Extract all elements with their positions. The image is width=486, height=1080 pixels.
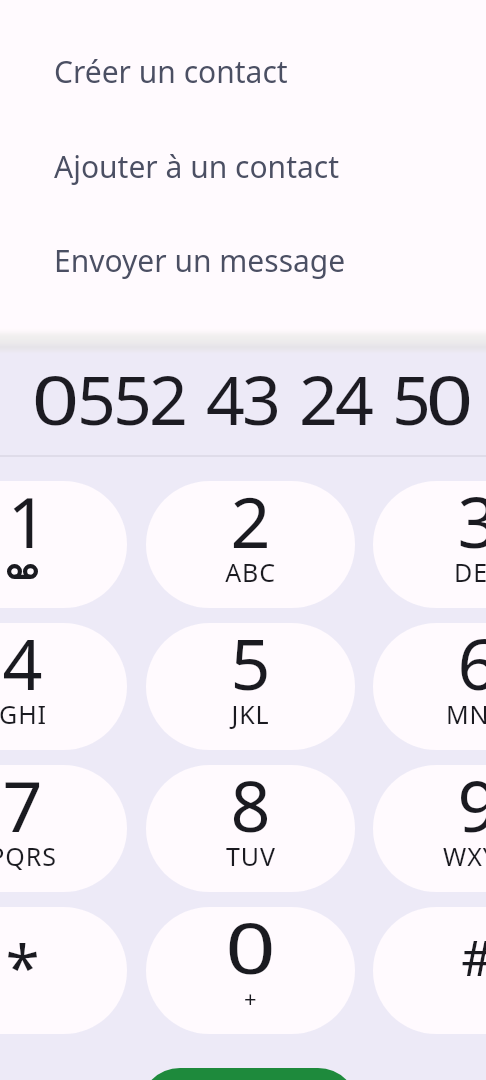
staticText: 9 bbox=[457, 765, 486, 852]
button[interactable]: Ajouter à un contact bbox=[0, 119, 486, 213]
staticText: 8 bbox=[230, 765, 271, 852]
staticText: 4 bbox=[2, 623, 43, 710]
button[interactable]: 3 bbox=[373, 481, 486, 608]
staticText: 6 bbox=[457, 623, 486, 710]
staticText: PQRS bbox=[0, 839, 57, 873]
staticText: 2 bbox=[299, 352, 335, 445]
button[interactable]: * bbox=[0, 907, 127, 1034]
button[interactable]: 1 bbox=[0, 481, 127, 608]
button[interactable]: Créer un contact bbox=[0, 24, 486, 118]
staticText: GHI bbox=[0, 697, 47, 731]
staticText: 2 bbox=[149, 352, 185, 445]
staticText: 1 bbox=[7, 481, 48, 568]
staticText: 4 bbox=[206, 352, 242, 445]
staticText: 3 bbox=[242, 352, 278, 445]
button[interactable]: 7 bbox=[0, 765, 127, 892]
staticText: MNO bbox=[446, 697, 486, 731]
staticText: 5 bbox=[230, 623, 271, 710]
staticText: Ajouter à un contact bbox=[54, 146, 340, 187]
staticText: JKL bbox=[231, 697, 270, 731]
button[interactable]: 2 bbox=[146, 481, 355, 608]
staticText: 0 bbox=[426, 352, 473, 445]
staticText: WXYZ bbox=[443, 839, 486, 873]
staticText: 2 bbox=[230, 481, 271, 568]
button[interactable]: Envoyer un message bbox=[0, 213, 486, 307]
staticText: Envoyer un message bbox=[54, 240, 346, 281]
staticText: 7 bbox=[2, 765, 43, 852]
staticText: DEF bbox=[454, 555, 486, 589]
button[interactable]: 8 bbox=[146, 765, 355, 892]
button[interactable]: 5 bbox=[146, 623, 355, 750]
staticText: 0 bbox=[225, 907, 276, 994]
button[interactable]: 9 bbox=[373, 765, 486, 892]
button[interactable]: 6 bbox=[373, 623, 486, 750]
staticText: 5 bbox=[113, 352, 149, 445]
staticText: 5 bbox=[392, 352, 428, 445]
button[interactable]: Appeler bbox=[140, 1068, 358, 1080]
button[interactable]: 0 bbox=[146, 907, 355, 1034]
staticText: 0 bbox=[32, 352, 79, 445]
staticText: + bbox=[244, 983, 257, 1013]
button[interactable]: 4 bbox=[0, 623, 127, 750]
staticText: 4 bbox=[335, 352, 371, 445]
staticText: # bbox=[461, 923, 486, 991]
staticText: * bbox=[5, 924, 40, 1008]
staticText: 5 bbox=[77, 352, 113, 445]
staticText: 3 bbox=[457, 481, 486, 568]
staticText: TUV bbox=[226, 839, 276, 873]
staticText: ABC bbox=[225, 555, 276, 589]
staticText: Créer un contact bbox=[54, 51, 288, 92]
button[interactable]: # bbox=[373, 907, 486, 1034]
